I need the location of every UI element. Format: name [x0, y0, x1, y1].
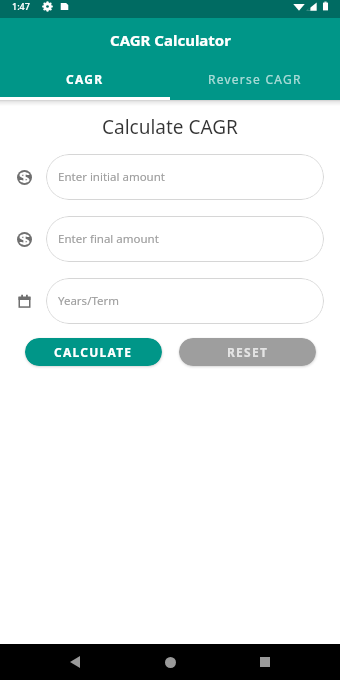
button[interactable]: Home: [150, 644, 190, 680]
staticText: CAGR: [66, 71, 104, 87]
button[interactable]: Back: [55, 644, 95, 680]
staticText: RESET: [227, 344, 269, 360]
staticText: Enter final amount: [58, 231, 159, 247]
button[interactable]: Years/Term: [46, 278, 324, 324]
staticText: CALCULATE: [54, 344, 133, 360]
button[interactable]: CAGR: [0, 61, 170, 97]
button[interactable]: CALCULATE: [25, 338, 162, 366]
staticText: 1:47: [12, 0, 30, 12]
button[interactable]: Recent apps: [245, 644, 285, 680]
button[interactable]: RESET: [179, 338, 316, 366]
button[interactable]: Reverse CAGR: [170, 61, 340, 97]
staticText: CAGR Calculator: [110, 30, 231, 50]
button[interactable]: Enter initial amount: [46, 154, 324, 200]
staticText: Calculate CAGR: [102, 114, 238, 140]
button[interactable]: Enter final amount: [46, 216, 324, 262]
staticText: Reverse CAGR: [208, 71, 302, 87]
staticText: Enter initial amount: [58, 169, 165, 185]
staticText: Years/Term: [58, 293, 119, 309]
